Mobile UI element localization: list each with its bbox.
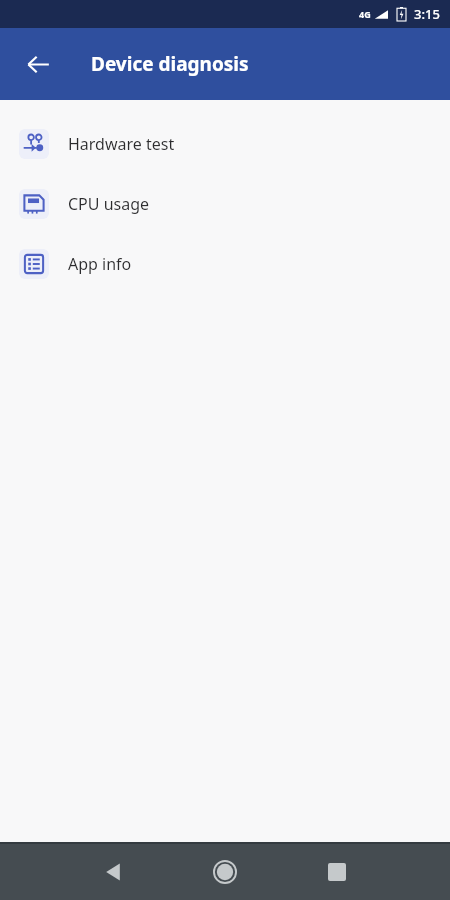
button[interactable]: Hardware test (0, 114, 450, 174)
staticText: App info (68, 253, 132, 275)
button[interactable]: Recent apps (313, 848, 361, 896)
staticText: CPU usage (68, 193, 150, 215)
button[interactable]: Home (201, 848, 249, 896)
button[interactable]: App info (0, 234, 450, 294)
button[interactable]: Back (16, 42, 60, 86)
button[interactable]: Back (89, 848, 137, 896)
staticText: Device diagnosis (91, 51, 249, 77)
button[interactable]: CPU usage (0, 174, 450, 234)
staticText: Hardware test (68, 133, 175, 155)
staticText: 4G (359, 8, 371, 20)
staticText: 3:15 (414, 5, 440, 23)
